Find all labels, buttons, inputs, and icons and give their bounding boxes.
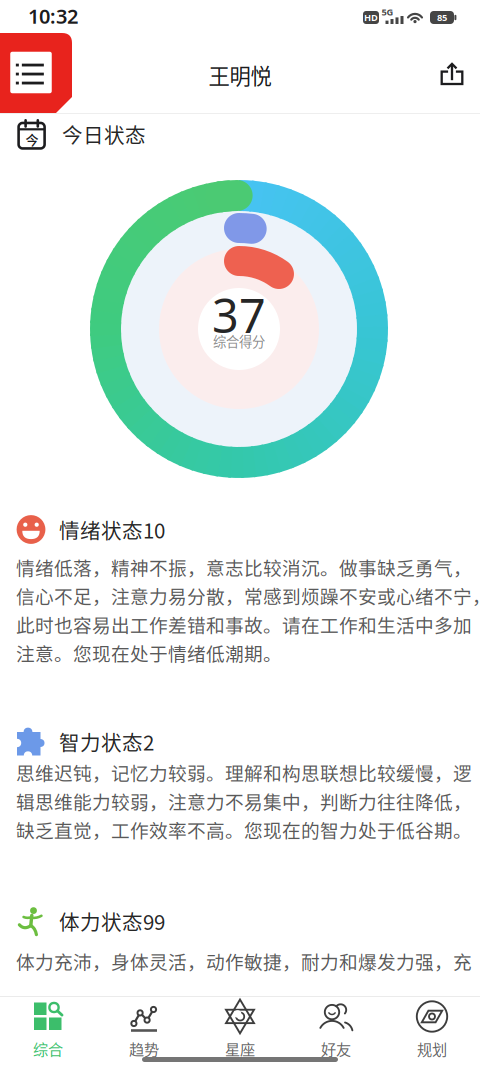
staticText: 星座 bbox=[225, 1037, 255, 1059]
staticText: 今 bbox=[25, 130, 38, 148]
staticText: 智力状态2 bbox=[59, 727, 154, 756]
staticText: 趋势 bbox=[129, 1037, 159, 1059]
button[interactable]: 分享 bbox=[432, 54, 472, 94]
staticText: 王明悦 bbox=[208, 60, 271, 90]
staticText: 情绪状态10 bbox=[59, 515, 165, 544]
staticText: 5G bbox=[381, 6, 393, 18]
button[interactable]: 规划 bbox=[384, 998, 480, 1060]
staticText: 综合得分 bbox=[213, 331, 265, 351]
button[interactable]: 星座 bbox=[192, 998, 288, 1060]
button[interactable]: 综合 bbox=[0, 998, 96, 1060]
staticText: 规划 bbox=[417, 1037, 447, 1059]
staticText: 综合 bbox=[33, 1037, 63, 1059]
button[interactable]: 菜单 bbox=[0, 33, 72, 113]
staticText: 85 bbox=[437, 11, 447, 24]
staticText: 体力状态99 bbox=[59, 906, 165, 936]
button[interactable]: 好友 bbox=[288, 998, 384, 1060]
staticText: 好友 bbox=[321, 1037, 351, 1059]
staticText: 情绪低落，精神不振，意志比较消沉。做事缺乏勇气， 信心不足，注意力易分散，常感到… bbox=[16, 553, 480, 666]
staticText: 37 bbox=[212, 284, 266, 346]
staticText: 体力充沛，身体灵活，动作敏捷，耐力和爆发力强，充 bbox=[16, 947, 472, 974]
staticText: 思维迟钝，记忆力较弱。理解和构思联想比较缓慢，逻 辑思维能力较弱，注意力不易集中… bbox=[16, 759, 472, 843]
button[interactable]: 趋势 bbox=[96, 998, 192, 1060]
staticText: 今日状态 bbox=[62, 119, 146, 149]
staticText: 10:32 bbox=[28, 3, 78, 29]
staticText: HD bbox=[364, 11, 378, 24]
